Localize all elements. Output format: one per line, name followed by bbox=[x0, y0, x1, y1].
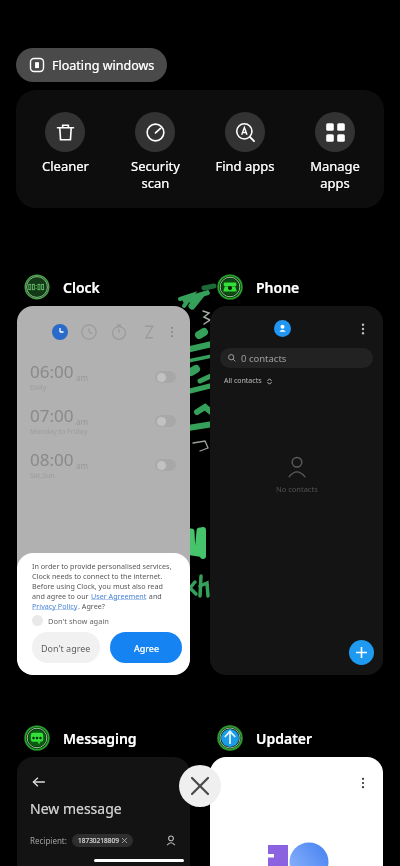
staticText: Daily bbox=[30, 383, 47, 393]
staticText: . Agree? bbox=[78, 601, 105, 611]
button[interactable]: 06:00 bbox=[30, 360, 176, 393]
staticText: am bbox=[76, 416, 88, 427]
staticText: Recipient: bbox=[30, 835, 67, 846]
button[interactable]: Don't show again bbox=[32, 615, 109, 626]
button[interactable]: Cleaner bbox=[24, 112, 106, 175]
button[interactable]: 06:00 bbox=[17, 306, 190, 675]
button[interactable]: Floating windows bbox=[16, 48, 167, 82]
button[interactable]: All contacts bbox=[224, 376, 273, 386]
staticText: Don't show again bbox=[48, 616, 109, 626]
staticText: and agree to our bbox=[32, 591, 91, 601]
staticText: 0 contacts bbox=[241, 352, 287, 365]
button[interactable]: Manage apps bbox=[294, 112, 376, 192]
staticText: 07:00 bbox=[30, 404, 74, 427]
staticText: Cleaner bbox=[42, 157, 89, 175]
button[interactable]: Add contact bbox=[349, 640, 374, 665]
button[interactable]: Security scan bbox=[114, 112, 196, 192]
staticText: All contacts bbox=[224, 376, 262, 386]
staticText: Clock needs to connect to the internet. bbox=[32, 571, 163, 581]
staticText: New message bbox=[30, 799, 122, 818]
staticText: Updater bbox=[256, 729, 313, 748]
button[interactable]: Privacy Policy bbox=[32, 601, 78, 611]
button[interactable]: 08:00 bbox=[30, 448, 176, 481]
staticText: Don't agree bbox=[41, 642, 91, 654]
button[interactable]: Clock bbox=[17, 274, 100, 300]
other: More options bbox=[357, 777, 369, 789]
staticText: 06:00 bbox=[30, 360, 74, 383]
button[interactable]: 0 contacts bbox=[220, 348, 373, 368]
staticText: 18730218809 bbox=[78, 836, 119, 845]
button[interactable]: Agree bbox=[110, 632, 182, 663]
staticText: Agree bbox=[134, 642, 159, 654]
staticText: Floating windows bbox=[52, 57, 155, 74]
button[interactable]: User Agreement bbox=[91, 591, 147, 601]
button[interactable]: Find apps bbox=[204, 112, 286, 175]
button[interactable]: Close bbox=[179, 765, 221, 807]
staticText: 08:00 bbox=[30, 448, 74, 471]
button[interactable]: Phone bbox=[210, 274, 300, 300]
staticText: No contacts bbox=[276, 484, 318, 494]
button[interactable]: 0 contacts bbox=[210, 306, 383, 675]
button[interactable]: 07:00 bbox=[30, 404, 176, 437]
button[interactable]: Updater bbox=[210, 725, 313, 751]
staticText: Before using Clock, you must also read bbox=[32, 581, 163, 591]
button[interactable]: Messaging bbox=[17, 725, 137, 751]
staticText: am bbox=[76, 372, 88, 383]
staticText: am bbox=[76, 460, 88, 471]
staticText: Monday to Friday bbox=[30, 427, 88, 437]
staticText: Find apps bbox=[215, 157, 275, 175]
staticText: Phone bbox=[256, 278, 300, 297]
button[interactable]: More options bbox=[210, 757, 383, 866]
button[interactable]: Back bbox=[17, 757, 190, 866]
staticText: and bbox=[147, 591, 162, 601]
staticText: Manage apps bbox=[310, 157, 360, 192]
staticText: Security scan bbox=[131, 157, 180, 192]
other: Back bbox=[32, 775, 46, 789]
staticText: In order to provide personalised service… bbox=[32, 561, 172, 571]
staticText: Sat,Sun bbox=[30, 471, 55, 481]
staticText: Messaging bbox=[63, 729, 137, 748]
button[interactable]: Don't agree bbox=[32, 632, 100, 663]
staticText: Clock bbox=[63, 278, 100, 297]
